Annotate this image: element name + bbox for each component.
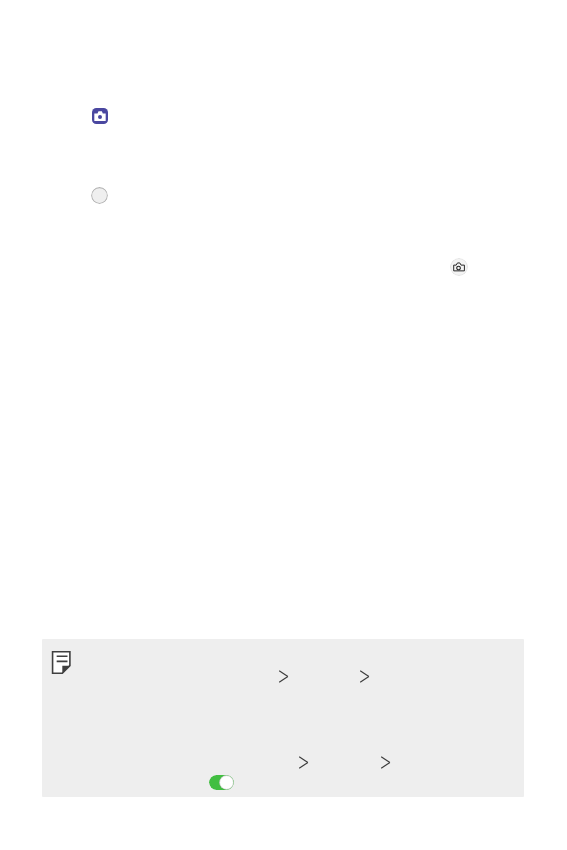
button[interactable]: Select option — [91, 187, 108, 204]
button[interactable]: Toggle row — [42, 724, 524, 797]
button[interactable]: Notes settings — [42, 639, 524, 724]
button[interactable]: Note — [51, 651, 72, 674]
button[interactable]: Take photo — [450, 258, 468, 276]
button[interactable]: Enabled toggle — [209, 775, 234, 790]
button[interactable]: Open — [295, 754, 308, 771]
button[interactable]: Open — [356, 668, 369, 685]
button[interactable]: Open — [377, 754, 390, 771]
button[interactable]: Open — [275, 668, 288, 685]
button[interactable]: Camera app icon — [92, 108, 108, 124]
